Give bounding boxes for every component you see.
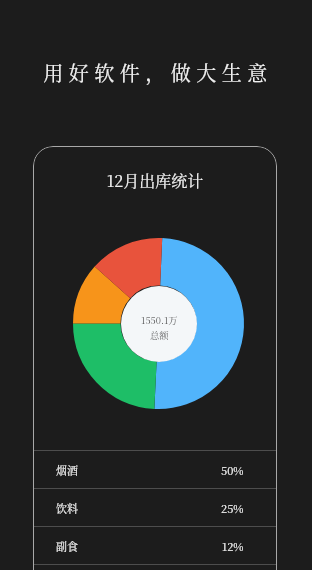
staticText: 副食 <box>56 538 78 554</box>
button[interactable]: 副食 <box>33 527 277 564</box>
staticText: 12% <box>222 538 244 554</box>
button[interactable]: 饮料 <box>33 489 277 526</box>
staticText: 烟酒 <box>56 462 78 478</box>
button[interactable]: 日化 <box>33 565 277 570</box>
staticText: 1550.1万 <box>141 313 178 326</box>
staticText: 25% <box>221 500 244 516</box>
staticText: 50% <box>221 462 244 478</box>
other: 12月出库统计饼图 <box>73 238 244 409</box>
staticText: 12月出库统计 <box>33 169 277 192</box>
staticText: 用好软件，做大生意 <box>2 58 312 87</box>
staticText: 总额 <box>150 328 169 341</box>
button[interactable]: 烟酒 <box>33 451 277 488</box>
staticText: 饮料 <box>56 500 78 516</box>
